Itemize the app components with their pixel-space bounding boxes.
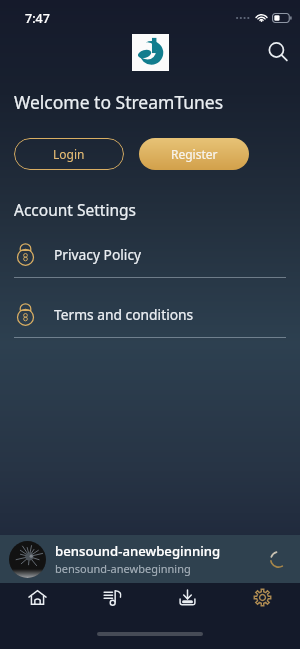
staticText: bensound-anewbeginning bbox=[55, 542, 221, 560]
button[interactable]: Login bbox=[14, 138, 124, 170]
button[interactable]: Playlist bbox=[75, 583, 150, 612]
button[interactable]: Search bbox=[262, 36, 294, 68]
button[interactable]: Settings bbox=[225, 583, 300, 612]
staticText: Register bbox=[171, 146, 218, 162]
staticText: Privacy Policy bbox=[54, 245, 142, 264]
staticText: bensound-anewbeginning bbox=[55, 561, 191, 576]
staticText: 7:47 bbox=[25, 10, 50, 27]
button[interactable]: Register bbox=[139, 138, 249, 170]
button[interactable]: bensound-anewbeginning bbox=[0, 535, 300, 583]
staticText: Login bbox=[53, 146, 85, 162]
button[interactable]: Privacy Policy bbox=[0, 240, 300, 300]
staticText: Welcome to StreamTunes bbox=[14, 90, 224, 114]
staticText: Account Settings bbox=[14, 199, 136, 220]
button[interactable]: StreamTunes logo bbox=[132, 34, 169, 71]
staticText: Terms and conditions bbox=[54, 305, 194, 324]
button[interactable]: Terms and conditions bbox=[0, 300, 300, 360]
button[interactable]: Downloads bbox=[150, 583, 225, 612]
button[interactable]: Home bbox=[0, 583, 75, 612]
